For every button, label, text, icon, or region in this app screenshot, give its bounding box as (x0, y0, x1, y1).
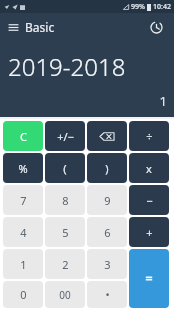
button[interactable]: x (129, 153, 169, 183)
button[interactable]: Equals (129, 249, 169, 308)
button[interactable]: ) (87, 153, 127, 183)
button[interactable]: ÷ (129, 121, 169, 151)
staticText: 2 (62, 257, 69, 272)
staticText: x (146, 161, 152, 176)
button[interactable]: Backspace (87, 121, 127, 151)
staticText: 2019-2018 (8, 50, 126, 83)
staticText: 8 (62, 193, 69, 208)
staticText: ÷ (146, 129, 153, 144)
staticText: 5 (62, 225, 69, 240)
staticText: +/− (57, 129, 74, 144)
button[interactable]: C (3, 121, 43, 151)
staticText: 00 (59, 288, 71, 302)
button[interactable]: 6 (87, 217, 127, 247)
button[interactable]: 8 (45, 185, 85, 215)
button[interactable]: 0 (3, 281, 43, 308)
button[interactable]: 9 (87, 185, 127, 215)
staticText: Basic (25, 19, 55, 35)
button[interactable]: 00 (45, 281, 85, 308)
button[interactable]: 5 (45, 217, 85, 247)
button[interactable]: 2 (45, 249, 85, 279)
staticText: 9 (104, 193, 111, 208)
button[interactable]: 3 (87, 249, 127, 279)
staticText: 4 (20, 225, 27, 240)
button[interactable]: − (129, 185, 169, 215)
staticText: C (20, 129, 27, 144)
staticText: 99% (131, 2, 145, 12)
button[interactable]: History (146, 17, 166, 37)
button[interactable]: % (3, 153, 43, 183)
staticText: 0 (20, 287, 27, 302)
button[interactable]: • (87, 281, 127, 308)
staticText: 10:42 (153, 2, 171, 12)
button[interactable]: 2019-2018 (0, 40, 174, 117)
button[interactable]: + (129, 217, 169, 247)
staticText: ( (63, 161, 67, 176)
staticText: 1 (20, 257, 27, 272)
staticText: 6 (104, 225, 111, 240)
staticText: 1 (159, 92, 167, 110)
button[interactable]: +/− (45, 121, 85, 151)
staticText: 7 (20, 193, 27, 208)
staticText: ) (105, 161, 109, 176)
button[interactable]: ( (45, 153, 85, 183)
staticText: − (146, 193, 153, 208)
button[interactable]: Menu (8, 19, 55, 35)
staticText: + (146, 225, 153, 240)
staticText: 3 (104, 257, 111, 272)
other: Menu (8, 22, 19, 33)
staticText: % (18, 161, 28, 176)
button[interactable]: 4 (3, 217, 43, 247)
button[interactable]: 1 (3, 249, 43, 279)
staticText: • (105, 287, 110, 302)
button[interactable]: 7 (3, 185, 43, 215)
